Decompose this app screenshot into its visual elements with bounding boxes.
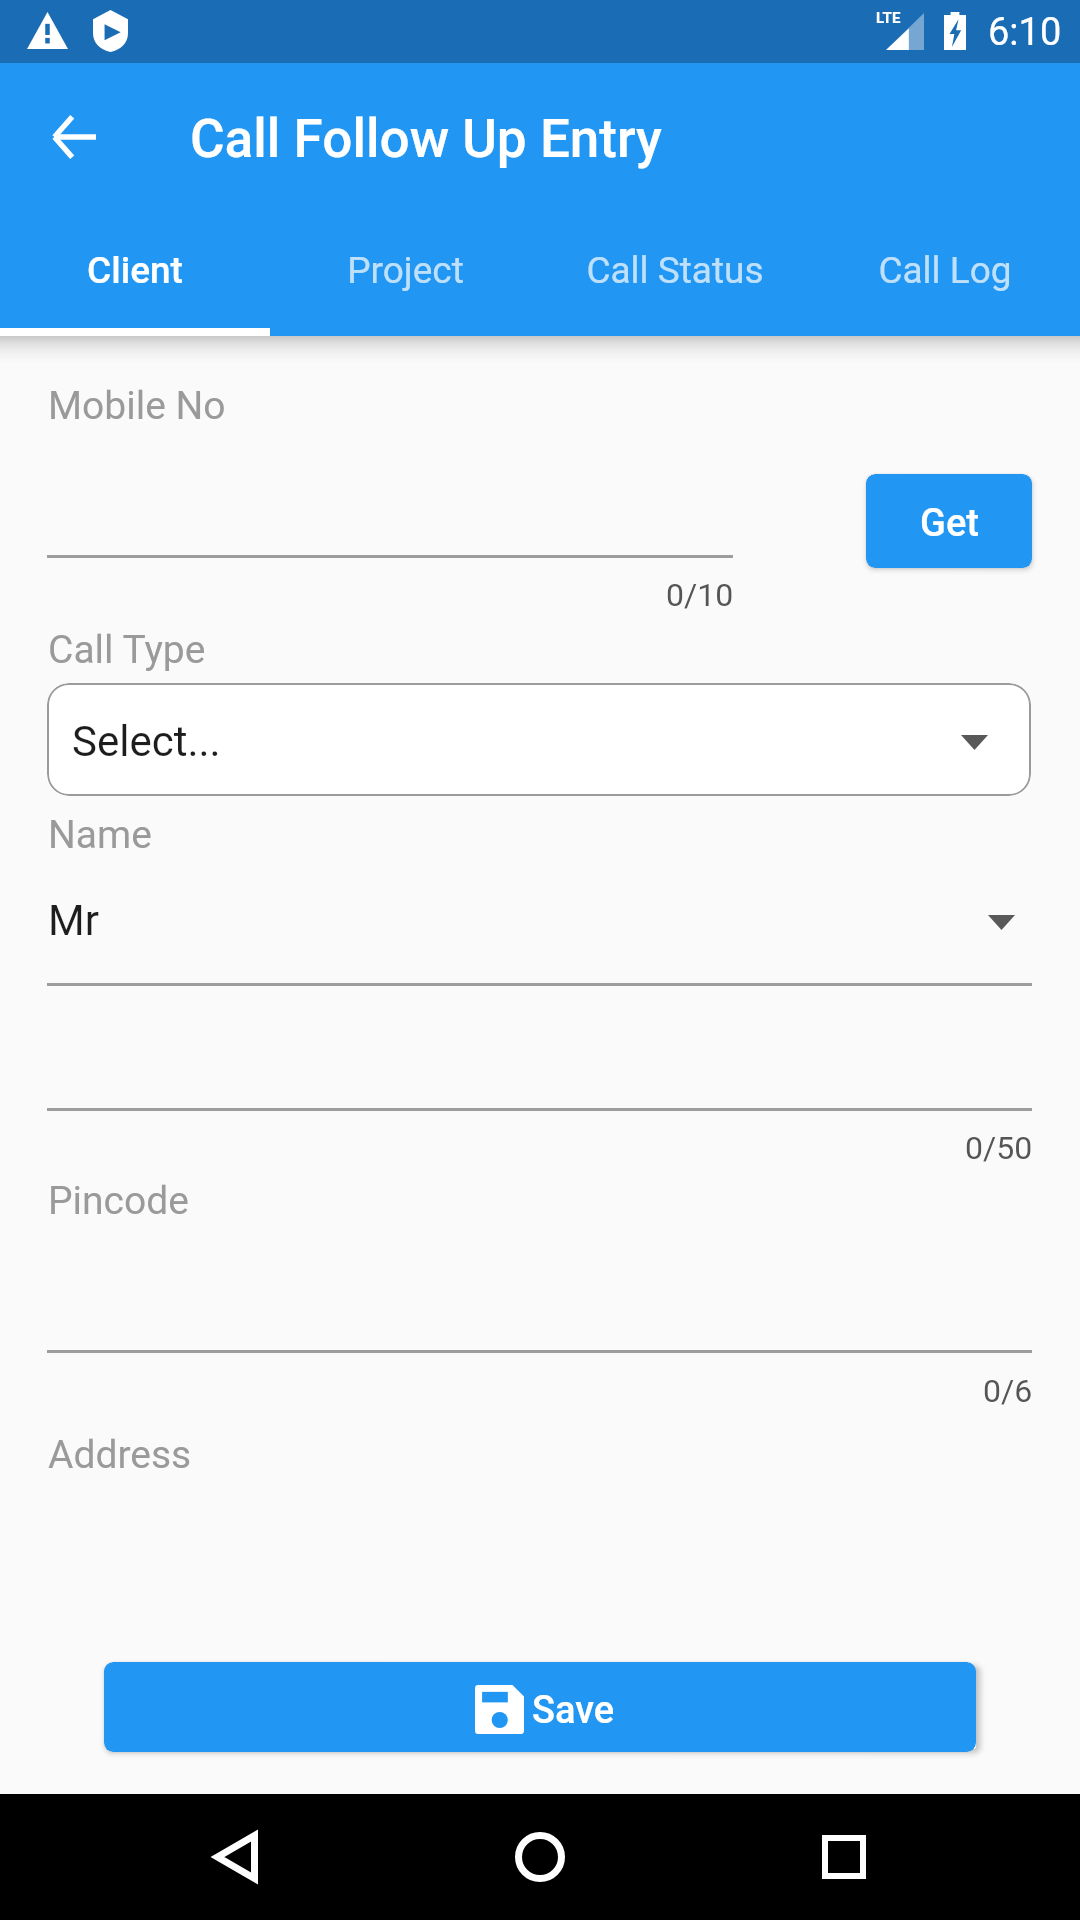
button[interactable]: Back	[176, 1812, 296, 1920]
button[interactable]: Project	[270, 228, 540, 336]
staticText: Call Log	[878, 249, 1012, 292]
button[interactable]: Recents	[784, 1812, 904, 1920]
button[interactable]: Get	[866, 474, 1032, 568]
staticText: Call Type	[48, 627, 206, 673]
staticText: Name	[48, 812, 152, 858]
button[interactable]: Pincode input	[47, 1241, 1032, 1353]
staticText: Address	[48, 1432, 192, 1478]
button[interactable]: Home	[480, 1812, 600, 1920]
button[interactable]: Call Status	[540, 228, 810, 336]
staticText: Mr	[48, 896, 99, 945]
staticText: Call Status	[586, 249, 764, 292]
staticText: Call Follow Up Entry	[190, 108, 662, 170]
staticText: Get	[920, 501, 979, 546]
button[interactable]: Title	[47, 876, 1032, 986]
staticText: Mobile No	[48, 383, 226, 429]
button[interactable]: Save	[104, 1662, 976, 1752]
button[interactable]: Name input	[47, 1001, 1032, 1111]
staticText: 0/50	[965, 1129, 1033, 1167]
staticText: Project	[347, 249, 464, 292]
staticText: Save	[532, 1688, 615, 1733]
staticText: 6:10	[988, 10, 1062, 55]
staticText: LTE	[876, 9, 901, 27]
button[interactable]: Client	[0, 228, 270, 336]
button[interactable]: Select...	[47, 683, 1031, 796]
button[interactable]: Back	[26, 89, 122, 185]
staticText: Client	[87, 249, 183, 292]
staticText: 0/6	[983, 1372, 1033, 1410]
staticText: Pincode	[48, 1178, 189, 1224]
staticText: 0/10	[666, 576, 734, 614]
button[interactable]: Mobile No input	[47, 446, 733, 558]
button[interactable]: Call Log	[810, 228, 1080, 336]
staticText: Select...	[72, 717, 221, 766]
